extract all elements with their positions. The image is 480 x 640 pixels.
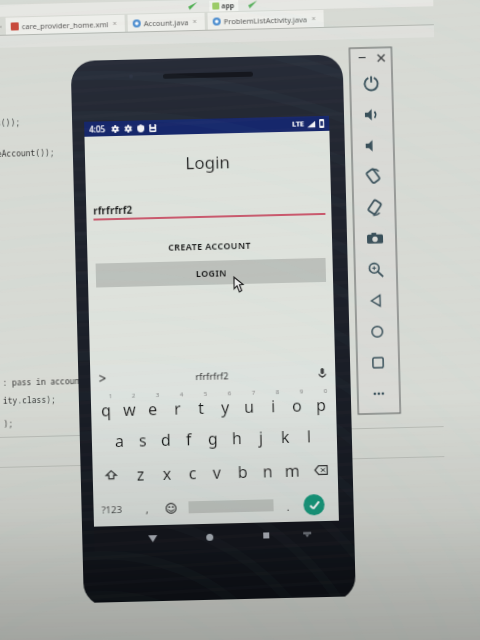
staticText: 4:05 bbox=[89, 123, 105, 135]
staticText: z bbox=[136, 463, 145, 486]
staticText: s()); bbox=[0, 116, 20, 128]
staticText: LOGIN bbox=[196, 266, 227, 279]
button[interactable]: m bbox=[279, 453, 305, 488]
button[interactable]: 2 bbox=[117, 390, 141, 424]
button[interactable]: LOGIN bbox=[96, 258, 326, 287]
staticText: h bbox=[232, 427, 242, 449]
button[interactable]: Home bbox=[356, 315, 399, 347]
button[interactable]: 9 bbox=[285, 386, 309, 420]
button[interactable]: Voice input bbox=[315, 366, 329, 380]
button[interactable]: Close bbox=[374, 51, 387, 64]
staticText: e bbox=[148, 398, 158, 420]
button[interactable]: 3 bbox=[141, 390, 165, 423]
button[interactable]: d bbox=[153, 423, 177, 457]
button[interactable]: Volume down bbox=[351, 129, 394, 161]
button[interactable]: Overview bbox=[357, 346, 399, 378]
button[interactable]: c bbox=[179, 456, 205, 490]
button[interactable]: Shift bbox=[99, 464, 122, 486]
staticText: 4 bbox=[180, 390, 184, 398]
staticText: care_provider_home.xml bbox=[22, 19, 109, 31]
button[interactable]: 7 bbox=[237, 388, 261, 421]
staticText: , bbox=[145, 501, 149, 515]
staticText: : pass in account bbox=[2, 375, 84, 388]
button[interactable]: 1 bbox=[94, 391, 117, 425]
staticText: 2 bbox=[132, 392, 136, 400]
button[interactable]: Done bbox=[303, 494, 325, 515]
button[interactable]: Backspace bbox=[310, 460, 331, 480]
button[interactable]: Switch keyboard bbox=[299, 526, 315, 543]
button[interactable]: app bbox=[209, 0, 238, 12]
button[interactable]: Debug bbox=[248, 0, 257, 10]
staticText: r bbox=[174, 397, 181, 420]
button[interactable]: Account.java bbox=[127, 13, 205, 32]
button[interactable]: x bbox=[153, 457, 180, 491]
button[interactable]: Power bbox=[350, 67, 393, 99]
button[interactable]: ?123 bbox=[98, 503, 126, 517]
staticText: 3 bbox=[156, 391, 160, 399]
button[interactable]: ProblemListActivity.java bbox=[207, 10, 324, 30]
button[interactable]: care_provider_home.xml bbox=[5, 15, 125, 35]
button[interactable]: n bbox=[254, 454, 280, 489]
button[interactable]: h bbox=[224, 421, 249, 455]
staticText: 9 bbox=[300, 387, 304, 396]
button[interactable]: k bbox=[272, 420, 297, 454]
staticText: m bbox=[284, 460, 300, 482]
button[interactable]: l bbox=[296, 419, 321, 454]
button[interactable]: f bbox=[176, 422, 201, 457]
button[interactable]: Run bbox=[188, 2, 197, 11]
button[interactable]: a bbox=[107, 424, 131, 458]
button[interactable]: z bbox=[127, 457, 154, 492]
button[interactable]: Space bbox=[188, 499, 274, 513]
staticText: y bbox=[221, 396, 230, 418]
staticText: Account.java bbox=[144, 17, 189, 28]
button[interactable]: s bbox=[130, 423, 154, 458]
button[interactable]: Period bbox=[281, 499, 294, 511]
button[interactable]: Rotate left bbox=[352, 160, 395, 192]
button[interactable]: Back bbox=[143, 529, 161, 547]
staticText: a bbox=[115, 430, 124, 452]
button[interactable]: j bbox=[248, 420, 273, 455]
staticText: i bbox=[271, 395, 276, 417]
staticText: b bbox=[237, 461, 248, 483]
staticText: 7 bbox=[252, 389, 256, 397]
button[interactable]: Minimize bbox=[355, 52, 368, 64]
button[interactable]: 4 bbox=[165, 389, 189, 423]
button[interactable]: 0 bbox=[309, 386, 333, 419]
staticText: rfrfrfrf2 bbox=[93, 203, 133, 218]
staticText: ); bbox=[3, 418, 14, 429]
staticText: eAccount()); bbox=[0, 146, 55, 159]
button[interactable]: Rotate right bbox=[353, 191, 396, 223]
staticText: 6 bbox=[228, 389, 232, 397]
staticText: f bbox=[186, 428, 192, 450]
button[interactable]: v bbox=[204, 455, 230, 490]
staticText: q bbox=[101, 399, 111, 421]
staticText: 1 bbox=[109, 392, 113, 400]
button[interactable]: g bbox=[200, 421, 225, 456]
staticText: × bbox=[0, 23, 3, 31]
staticText: d bbox=[161, 429, 171, 451]
button[interactable]: Volume up bbox=[351, 98, 393, 130]
button[interactable]: rfrfrfrf2 bbox=[195, 369, 229, 382]
button[interactable]: 6 bbox=[213, 388, 237, 422]
staticText: . bbox=[286, 499, 290, 511]
button[interactable]: 8 bbox=[261, 387, 285, 421]
staticText: n bbox=[262, 460, 273, 482]
staticText: p bbox=[316, 394, 326, 416]
staticText: g bbox=[208, 428, 218, 450]
button[interactable]: Back bbox=[355, 284, 398, 316]
button[interactable]: Emoji bbox=[162, 500, 179, 516]
staticText: ?123 bbox=[101, 503, 123, 516]
staticText: × bbox=[311, 14, 317, 24]
button[interactable]: Expand suggestions bbox=[95, 371, 109, 385]
button[interactable]: More bbox=[357, 377, 400, 409]
button[interactable]: Zoom bbox=[354, 253, 397, 285]
staticText: l bbox=[307, 425, 312, 447]
button[interactable]: Comma bbox=[139, 501, 154, 515]
button[interactable]: 5 bbox=[189, 389, 213, 422]
button[interactable]: Overview bbox=[257, 526, 275, 545]
button[interactable]: b bbox=[229, 455, 255, 489]
staticText: × bbox=[193, 17, 198, 27]
button[interactable]: CREATE ACCOUNT bbox=[87, 233, 332, 258]
button[interactable]: Home bbox=[200, 528, 218, 546]
button[interactable]: Screenshot bbox=[354, 222, 396, 254]
